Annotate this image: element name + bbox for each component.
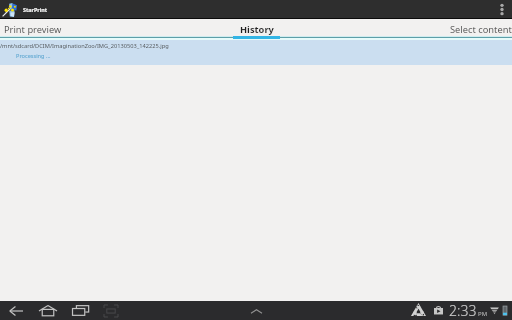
button[interactable]: Expand status xyxy=(247,302,265,320)
button[interactable]: More options xyxy=(495,0,509,18)
staticText: Processing ... xyxy=(16,52,51,60)
staticText: Print preview xyxy=(4,23,62,36)
button[interactable]: Recent apps xyxy=(67,301,93,320)
staticText: /mnt/sdcard/DCIM/ImaginationZoo/IMG_2013… xyxy=(0,42,169,50)
button[interactable]: /mnt/sdcard/DCIM/ImaginationZoo/IMG_2013… xyxy=(0,40,512,65)
button[interactable]: Back xyxy=(3,301,29,320)
button[interactable]: Select content xyxy=(450,19,512,40)
staticText: History xyxy=(240,23,274,36)
staticText: StarPrint xyxy=(23,6,48,13)
button[interactable]: Print preview xyxy=(0,19,68,40)
staticText: PM xyxy=(478,310,488,318)
button[interactable]: Home xyxy=(35,301,61,320)
staticText: Select content xyxy=(450,23,512,36)
button[interactable]: Screenshot xyxy=(98,301,124,320)
button[interactable]: History xyxy=(233,19,280,40)
staticText: 2:33 xyxy=(449,301,477,320)
